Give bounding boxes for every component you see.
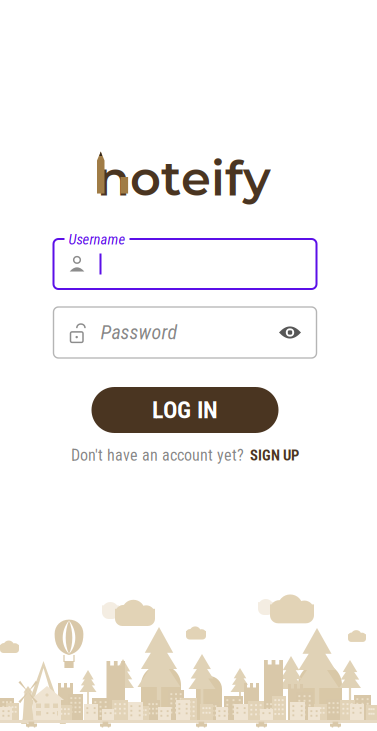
staticText: Password (100, 321, 177, 344)
staticText: Don't have an account yet? (71, 446, 244, 465)
button[interactable]: Password (53, 307, 316, 358)
button[interactable]: LOG IN (91, 387, 278, 433)
staticText: Username (68, 231, 125, 248)
staticText: noteify (97, 149, 271, 207)
button[interactable]: Username (53, 239, 316, 289)
staticText: LOG IN (152, 396, 218, 424)
staticText: SIGN UP (250, 447, 299, 464)
button[interactable]: SIGN UP (250, 447, 299, 464)
